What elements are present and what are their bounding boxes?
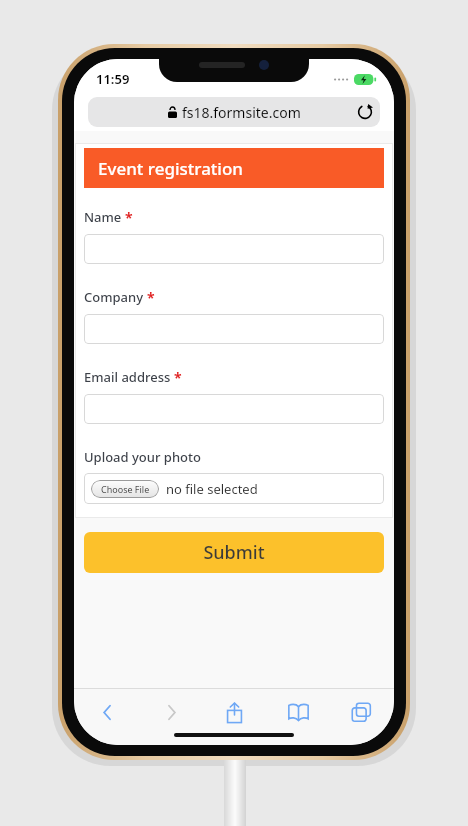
staticText: no file selected	[166, 480, 258, 498]
button[interactable]: Share	[217, 695, 251, 729]
staticText: Submit	[203, 540, 265, 565]
staticText: *	[125, 208, 133, 227]
button[interactable]: Choose File	[91, 480, 159, 498]
button[interactable]: Submit	[84, 532, 384, 573]
button[interactable]: Bookmarks	[281, 695, 315, 729]
staticText: 11:59	[96, 70, 130, 88]
staticText: Choose File	[101, 483, 150, 495]
staticText: fs18.formsite.com	[182, 103, 301, 122]
button[interactable]: Tabs	[344, 695, 378, 729]
staticText: *	[174, 368, 182, 387]
button[interactable]	[84, 314, 384, 344]
staticText: Upload your photo	[84, 448, 201, 466]
button[interactable]: Reload	[352, 99, 378, 125]
staticText: Company	[84, 288, 144, 306]
staticText: *	[147, 288, 155, 307]
staticText: Name	[84, 208, 122, 226]
button[interactable]: fs18.formsite.com	[88, 97, 380, 127]
button[interactable]: Forward	[154, 695, 188, 729]
staticText: Email address	[84, 368, 171, 386]
button[interactable]	[84, 394, 384, 424]
staticText: Event registration	[98, 157, 244, 180]
button[interactable]	[84, 234, 384, 264]
button[interactable]: Back	[90, 695, 124, 729]
